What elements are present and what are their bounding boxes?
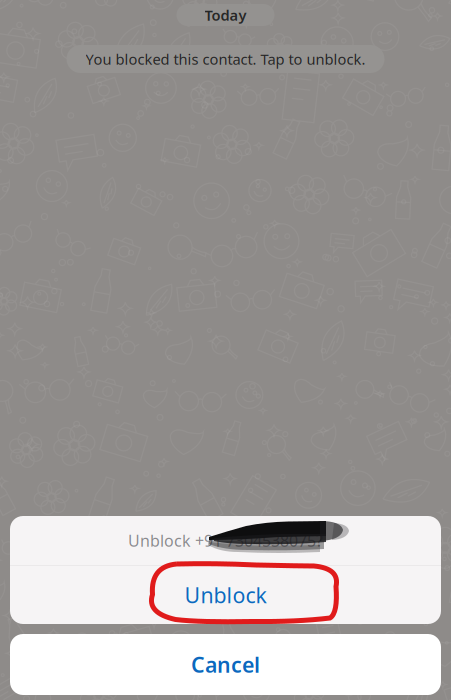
button[interactable]: Cancel: [10, 634, 441, 695]
staticText: Cancel: [191, 650, 260, 679]
staticText: You blocked this contact. Tap to unblock…: [85, 49, 365, 69]
button[interactable]: You blocked this contact. Tap to unblock…: [66, 45, 384, 73]
staticText: Today: [204, 5, 246, 25]
button[interactable]: Unblock: [10, 566, 441, 624]
staticText: Unblock: [184, 581, 266, 609]
staticText: Unblock +91 7304538075?: [128, 530, 323, 551]
